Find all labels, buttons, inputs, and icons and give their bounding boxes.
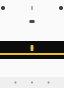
button[interactable]: Back xyxy=(1,6,5,10)
button[interactable]: Profile xyxy=(47,81,49,83)
button[interactable]: Search xyxy=(31,81,33,83)
button[interactable]: More xyxy=(59,6,63,10)
button[interactable]: Home xyxy=(14,81,16,83)
